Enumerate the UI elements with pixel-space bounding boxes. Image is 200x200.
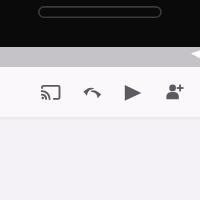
button[interactable]: Cast to device — [41, 82, 61, 102]
button[interactable]: Undo and redo — [83, 82, 103, 102]
button[interactable]: Add person — [164, 82, 184, 102]
button[interactable]: Play — [123, 82, 143, 102]
